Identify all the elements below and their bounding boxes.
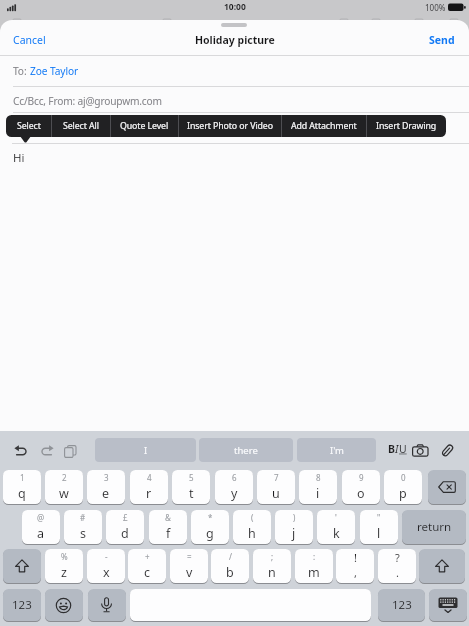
staticText: l (377, 525, 381, 542)
staticText: Zoe Taylor (30, 64, 79, 78)
staticText: t (189, 485, 194, 502)
button[interactable]: ) (275, 510, 313, 544)
button[interactable]: ( (233, 510, 271, 544)
staticText: Add Attachment (291, 120, 357, 132)
staticText: Quote Level (120, 120, 169, 132)
staticText: 7 (274, 472, 279, 483)
button[interactable]: £ (106, 510, 144, 544)
button[interactable]: ' (317, 510, 355, 544)
button[interactable]: 2 (45, 470, 83, 504)
button[interactable]: Cancel (8, 31, 41, 45)
staticText: a (37, 525, 45, 542)
staticText: Send (429, 33, 455, 47)
button[interactable] (130, 589, 371, 621)
button[interactable]: = (170, 549, 208, 583)
staticText: 123 (392, 597, 412, 613)
staticText: s (80, 525, 86, 542)
button[interactable]: " (360, 510, 398, 544)
button[interactable]: 7 (257, 470, 295, 504)
staticText: / (229, 551, 232, 562)
staticText: Cc/Bcc, From: aj@groupwm.com (13, 94, 162, 108)
button[interactable]: I'm (297, 438, 376, 462)
button[interactable] (14, 444, 28, 457)
button[interactable]: Send (424, 31, 450, 45)
button[interactable]: 6 (215, 470, 253, 504)
staticText: Select (17, 120, 41, 132)
button[interactable]: ? (378, 549, 416, 583)
button[interactable]: 8 (299, 470, 337, 504)
button[interactable] (10, 441, 34, 461)
button[interactable]: Cc/Bcc, From: aj@groupwm.com (13, 94, 162, 108)
button[interactable]: 3 (87, 470, 125, 504)
staticText: e (102, 485, 110, 502)
button[interactable]: @ (22, 510, 60, 544)
button[interactable]: To: (13, 64, 79, 78)
button[interactable]: * (191, 510, 229, 544)
button[interactable] (428, 470, 466, 504)
button[interactable]: Add Attachment (282, 115, 366, 137)
button[interactable]: there (199, 438, 293, 462)
staticText: * (208, 512, 213, 523)
button[interactable]: B (388, 442, 407, 456)
button[interactable] (88, 589, 126, 621)
button[interactable]: / (211, 549, 249, 583)
staticText: d (121, 525, 129, 542)
staticText: I (144, 444, 148, 457)
staticText: B (388, 442, 395, 456)
button[interactable]: 123 (378, 589, 425, 621)
button[interactable]: Select All (52, 115, 110, 137)
staticText: + (145, 551, 150, 562)
staticText: 100% (425, 2, 446, 13)
button[interactable]: I (95, 438, 196, 462)
staticText: x (103, 564, 110, 581)
staticText: : (313, 551, 316, 562)
button[interactable]: - (87, 549, 125, 583)
button[interactable]: Select (6, 115, 51, 137)
staticText: . (396, 565, 399, 580)
button[interactable]: 5 (172, 470, 210, 504)
button[interactable]: & (149, 510, 187, 544)
staticText: # (80, 512, 86, 523)
button[interactable]: : (295, 549, 333, 583)
button[interactable]: 0 (384, 470, 422, 504)
staticText: o (357, 485, 365, 502)
staticText: 10:00 (224, 1, 246, 13)
staticText: g (206, 525, 214, 542)
button[interactable]: % (45, 549, 83, 583)
button[interactable]: 9 (342, 470, 380, 504)
button[interactable] (64, 445, 77, 458)
button[interactable]: ; (253, 549, 291, 583)
staticText: U (399, 442, 407, 456)
button[interactable] (45, 589, 83, 621)
staticText: Cancel (13, 33, 46, 47)
button[interactable] (419, 549, 465, 583)
button[interactable] (3, 549, 41, 583)
staticText: y (231, 485, 238, 502)
staticText: , (354, 565, 357, 580)
button[interactable]: return (402, 510, 466, 544)
button[interactable]: 123 (3, 589, 41, 621)
button[interactable]: Insert Photo or Video (178, 115, 281, 137)
staticText: i (316, 485, 320, 502)
button[interactable]: # (64, 510, 102, 544)
button[interactable]: 1 (3, 470, 41, 504)
button[interactable]: + (128, 549, 166, 583)
staticText: - (105, 551, 108, 562)
staticText: 1 (20, 472, 25, 483)
button[interactable]: Quote Level (111, 115, 178, 137)
button[interactable] (429, 589, 467, 621)
button[interactable] (412, 444, 429, 457)
staticText: & (165, 512, 171, 523)
staticText: m (308, 564, 320, 581)
staticText: v (186, 564, 193, 581)
staticText: @ (37, 512, 45, 523)
staticText: Hi (13, 150, 25, 166)
button[interactable] (40, 444, 54, 457)
staticText: n (268, 564, 276, 581)
button[interactable]: Insert Drawing (367, 115, 446, 137)
button[interactable] (440, 443, 455, 458)
button[interactable]: ! (336, 549, 374, 583)
staticText: ? (395, 550, 400, 565)
staticText: ( (251, 512, 254, 523)
button[interactable]: 4 (130, 470, 168, 504)
